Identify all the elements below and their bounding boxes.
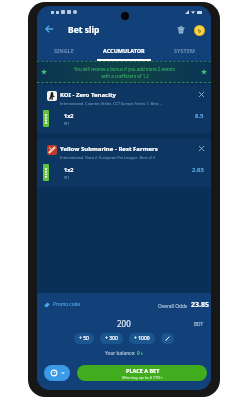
staticText: 0 ৳ xyxy=(137,350,143,357)
button[interactable]: SINGLE xyxy=(37,40,90,61)
staticText: ACCUMULATOR xyxy=(103,47,145,54)
staticText: + 1000 xyxy=(134,335,150,342)
staticText: W1 xyxy=(64,175,70,180)
button[interactable]: + 300 xyxy=(100,333,123,344)
button[interactable]: Yellow Submarine - Rest Farmers xyxy=(37,139,211,187)
staticText: BDT xyxy=(194,321,204,328)
staticText: with a coefficient of 1.2 xyxy=(101,73,149,79)
button[interactable]: PLACE A BET xyxy=(77,365,207,381)
button[interactable]: ACCUMULATOR xyxy=(90,40,157,61)
staticText: Bet slip xyxy=(68,24,100,36)
staticText: KOI - Zero Tenacity xyxy=(60,91,116,99)
button[interactable]: Edit stake xyxy=(161,333,174,344)
staticText: + 300 xyxy=(105,335,118,342)
staticText: 23.85 xyxy=(191,300,209,310)
staticText: 200 xyxy=(117,318,131,329)
staticText: W1 xyxy=(64,121,70,126)
staticText: Yellow Submarine - Rest Farmers xyxy=(60,145,158,153)
staticText: SYSTEM xyxy=(174,47,195,54)
button[interactable]: Promo code xyxy=(41,299,84,310)
staticText: + 50 xyxy=(79,335,89,342)
staticText: PLACE A BET xyxy=(126,367,160,374)
button[interactable]: Balance xyxy=(194,25,205,36)
staticText: International. Dota 2. European Pro Leag… xyxy=(60,155,155,160)
button[interactable]: Remove bet xyxy=(198,91,205,98)
staticText: You will receive a bonus if you add more… xyxy=(74,66,175,72)
button[interactable]: KOI - Zero Tenacity xyxy=(37,85,211,133)
staticText: 1x2 xyxy=(64,112,74,119)
staticText: Winning up to 4 770 ৳ xyxy=(122,375,163,380)
staticText: Overall Odds xyxy=(158,303,188,310)
button[interactable]: Remove bet xyxy=(198,145,205,152)
staticText: 1x2 xyxy=(64,166,74,173)
button[interactable]: Delete all xyxy=(175,24,187,36)
button[interactable]: SYSTEM xyxy=(157,40,211,61)
button[interactable]: Bet settings xyxy=(44,365,70,381)
staticText: Your balance: xyxy=(105,350,137,357)
button[interactable]: + 1000 xyxy=(129,333,155,344)
staticText: 8.5 xyxy=(195,112,204,120)
button[interactable]: + 50 xyxy=(74,333,94,344)
staticText: International. Counter-Strike. CCT Europ… xyxy=(60,101,163,106)
staticText: 2.65 xyxy=(192,166,204,174)
button[interactable]: Back xyxy=(42,23,56,37)
staticText: SINGLE xyxy=(54,47,74,54)
staticText: Promo code xyxy=(53,301,81,308)
staticText: ৳ xyxy=(198,27,201,34)
